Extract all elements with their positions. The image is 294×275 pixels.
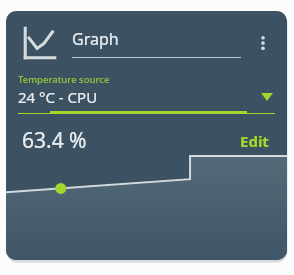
button[interactable]: Temperature source: [6, 73, 287, 114]
staticText: Edit: [240, 131, 269, 151]
staticText: Graph: [72, 28, 119, 50]
button[interactable]: More options: [249, 29, 277, 57]
staticText: Temperature source: [18, 73, 110, 86]
staticText: 63.4 %: [22, 126, 87, 155]
button[interactable]: Graph: [72, 28, 241, 58]
other: Graph icon: [22, 25, 58, 61]
staticText: 24 °C - CPU Package - Intel Core i: [18, 87, 139, 107]
button[interactable]: Edit: [236, 127, 273, 155]
